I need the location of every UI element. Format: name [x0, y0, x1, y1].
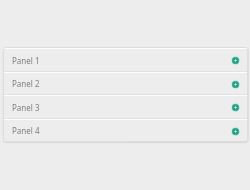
staticText: Panel 2: [12, 78, 40, 89]
button[interactable]: Panel 1: [3, 48, 248, 71]
button[interactable]: Expand Panel 2: [228, 77, 242, 91]
button[interactable]: Panel 3: [3, 95, 248, 118]
staticText: Panel 4: [12, 125, 40, 136]
staticText: Panel 1: [12, 55, 40, 66]
button[interactable]: Expand Panel 3: [228, 100, 242, 114]
button[interactable]: Panel 4: [3, 119, 248, 141]
button[interactable]: Expand Panel 4: [228, 124, 242, 138]
button[interactable]: Expand Panel 1: [228, 53, 242, 67]
button[interactable]: Panel 2: [3, 72, 248, 94]
staticText: Panel 3: [12, 102, 40, 113]
